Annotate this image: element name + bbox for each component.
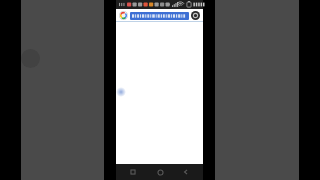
button[interactable]: Site info — [119, 11, 128, 20]
button[interactable]: App — [21, 49, 40, 68]
button[interactable] — [130, 12, 189, 20]
button[interactable]: More options — [191, 11, 200, 20]
button[interactable]: Recent apps — [124, 164, 142, 180]
button[interactable]: Home — [151, 164, 169, 180]
button[interactable]: Back — [177, 164, 195, 180]
